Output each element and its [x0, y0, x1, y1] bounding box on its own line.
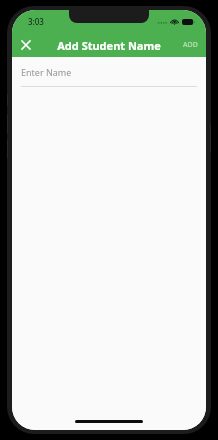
button[interactable]: Enter Name: [21, 66, 197, 87]
staticText: 3:03: [28, 16, 44, 27]
staticText: Add Student Name: [57, 38, 161, 53]
staticText: Enter Name: [21, 66, 72, 78]
button[interactable]: Close: [16, 35, 36, 55]
staticText: ADD: [183, 40, 198, 50]
button[interactable]: ADD: [175, 36, 206, 54]
